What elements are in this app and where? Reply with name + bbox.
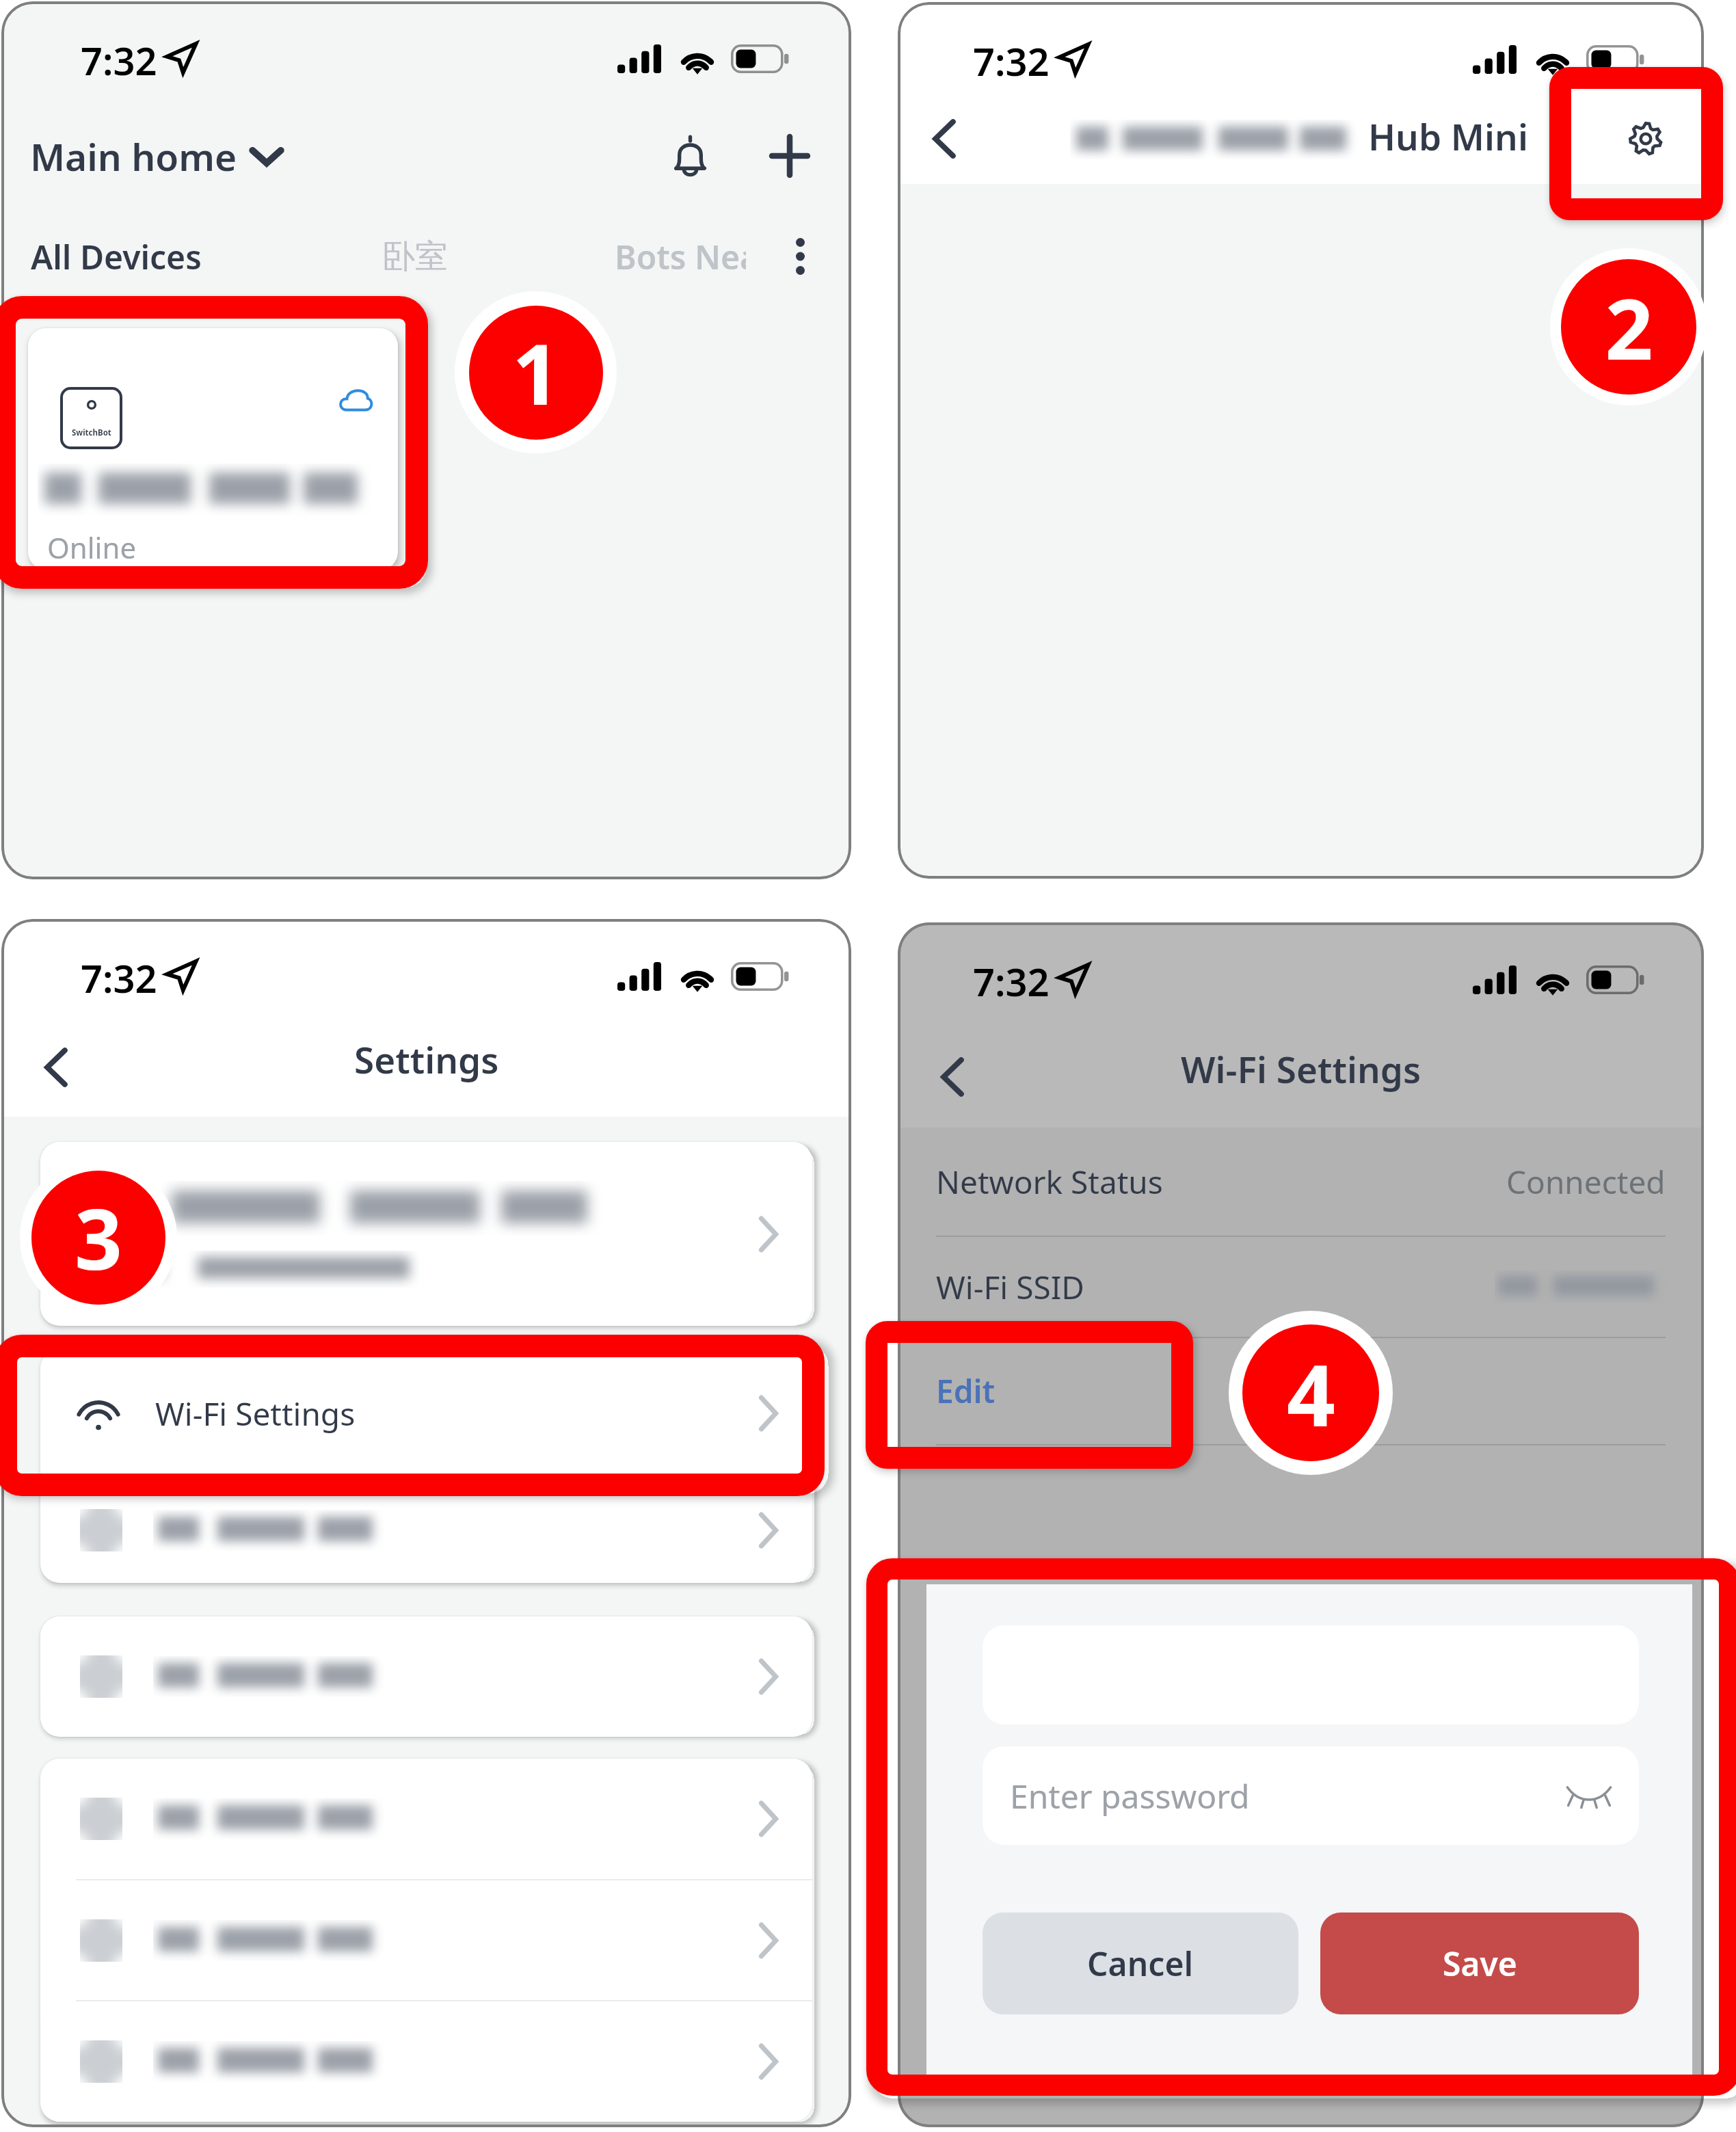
button[interactable]: Back: [22, 1033, 90, 1102]
staticText: Connected: [1506, 1160, 1666, 1203]
staticText: Hub Mini: [1368, 111, 1528, 161]
button[interactable]: [40, 1142, 812, 1326]
button[interactable]: Notifications: [658, 124, 721, 187]
button[interactable]: All Devices: [31, 235, 202, 279]
button[interactable]: Main home: [30, 131, 282, 182]
staticText: Main home: [30, 131, 237, 182]
staticText: Wi-Fi Settings: [155, 1392, 356, 1435]
button[interactable]: Settings: [1608, 101, 1683, 176]
button[interactable]: Bots Near: [615, 228, 746, 285]
staticText: 3: [75, 1181, 122, 1294]
staticText: Enter password: [1010, 1774, 1250, 1818]
staticText: SwitchBot: [72, 427, 111, 438]
staticText: Online: [47, 528, 137, 567]
button[interactable]: [40, 1478, 812, 1583]
button[interactable]: Back: [918, 1043, 987, 1111]
button[interactable]: [40, 1759, 812, 1879]
staticText: Settings: [354, 1035, 499, 1084]
staticText: Save: [1443, 1941, 1517, 1986]
staticText: Network Status: [936, 1160, 1163, 1203]
staticText: Wi-Fi Settings: [1181, 1044, 1421, 1093]
button[interactable]: Wi-Fi Settings: [40, 1349, 812, 1478]
staticText: 7:32: [81, 952, 157, 1004]
staticText: 7:32: [973, 35, 1050, 87]
staticText: 2: [1605, 270, 1653, 384]
button[interactable]: [40, 2001, 812, 2122]
button[interactable]: 卧室: [382, 236, 448, 277]
button[interactable]: [40, 1880, 812, 2000]
staticText: 7:32: [81, 34, 157, 86]
button[interactable]: More options: [777, 234, 823, 279]
button[interactable]: Wi-Fi SSID: [936, 1237, 1666, 1337]
button[interactable]: Enter password: [983, 1746, 1639, 1845]
button[interactable]: Save: [1320, 1913, 1639, 2014]
button[interactable]: Add device: [758, 124, 821, 187]
staticText: 4: [1287, 1335, 1335, 1451]
button[interactable]: [40, 1616, 812, 1737]
staticText: Cancel: [1087, 1941, 1194, 1986]
button[interactable]: SwitchBot: [28, 328, 398, 570]
button[interactable]: Edit: [936, 1338, 1666, 1444]
staticText: 7:32: [973, 955, 1050, 1007]
button[interactable]: Network Status: [936, 1128, 1666, 1236]
button[interactable]: Cancel: [983, 1913, 1298, 2014]
staticText: Edit: [936, 1370, 996, 1413]
button[interactable]: Back: [913, 108, 975, 170]
staticText: 1: [512, 316, 560, 429]
staticText: Bots Near: [615, 235, 746, 279]
staticText: Wi-Fi SSID: [936, 1266, 1084, 1309]
